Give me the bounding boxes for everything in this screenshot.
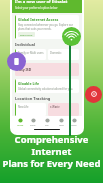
staticText: Domestic	[50, 51, 62, 55]
staticText: Family or Multi users	[18, 51, 44, 55]
staticText: Read more	[20, 33, 33, 36]
staticText: Global Internet Access	[18, 17, 59, 22]
button[interactable]: Home	[14, 116, 26, 129]
button[interactable]: SIM card	[7, 52, 26, 71]
staticText: Stay connected wherever you go. Explore …	[18, 23, 74, 27]
staticText: More	[71, 124, 77, 127]
button[interactable]: Help	[55, 116, 67, 129]
staticText: Pay	[45, 124, 49, 127]
staticText: Easy ISD	[17, 67, 32, 72]
button[interactable]: e-Waste	[48, 103, 79, 116]
button[interactable]: More	[68, 116, 80, 129]
button[interactable]: Family or Multi users	[15, 49, 46, 60]
button[interactable]: Gloable Life	[15, 79, 79, 93]
button[interactable]: Global Internet Access	[15, 15, 79, 39]
button[interactable]: Location	[85, 86, 102, 103]
staticText: Global connectivity solutions tailored f…	[18, 87, 74, 91]
staticText: Individual	[15, 42, 36, 47]
staticText: Shop	[30, 124, 36, 127]
button[interactable]: Wi-Fi	[62, 27, 81, 46]
staticText: Gloable Life	[18, 81, 40, 86]
staticText: Location Tracking	[15, 96, 51, 101]
staticText: Home	[17, 124, 24, 127]
staticText: Comprehensive Internet Plans for Every N…	[0, 133, 103, 170]
staticText: New Life	[18, 105, 29, 109]
button[interactable]: Shop	[27, 116, 39, 129]
staticText: I'm a new user of Etisalat	[15, 0, 68, 5]
button[interactable]: Read more	[20, 33, 33, 36]
button[interactable]: New Life	[15, 103, 46, 116]
staticText: Help	[59, 124, 64, 127]
staticText: Select your preferred option below	[15, 6, 58, 10]
button[interactable]: Domestic	[48, 49, 79, 60]
staticText: plans that suits your needs.	[18, 27, 52, 31]
button[interactable]: Pay	[41, 116, 53, 129]
staticText: e-Waste	[50, 105, 60, 109]
button[interactable]: Easy ISD	[15, 63, 79, 76]
